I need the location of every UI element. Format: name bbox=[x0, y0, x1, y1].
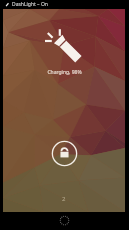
staticText: DashLight – On bbox=[12, 1, 48, 8]
button[interactable]: Unlock bbox=[58, 214, 71, 227]
button[interactable]: Toggle flashlight bbox=[44, 27, 84, 67]
button[interactable]: Lock bbox=[51, 140, 78, 167]
staticText: Charging, 98% bbox=[47, 69, 82, 76]
staticText: 2 bbox=[62, 195, 66, 203]
